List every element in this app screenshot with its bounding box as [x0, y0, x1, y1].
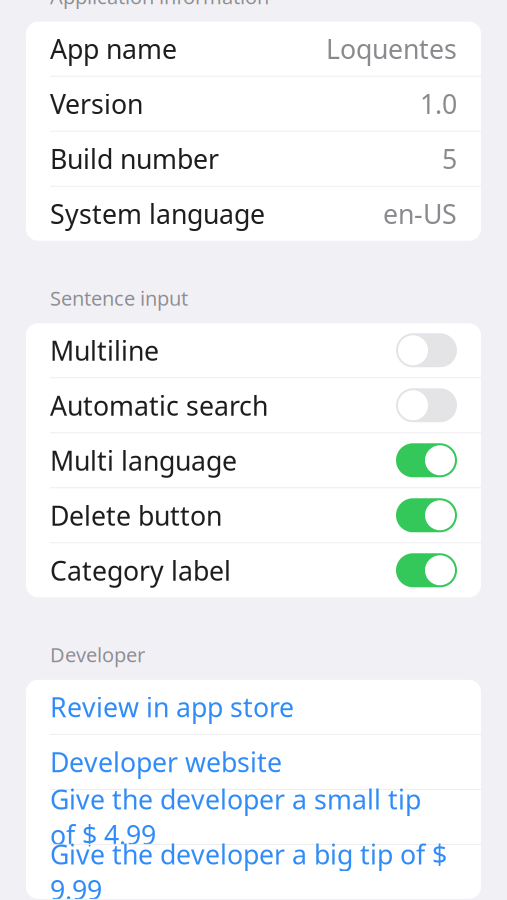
staticText: Multiline — [50, 333, 159, 368]
button[interactable]: Multi language — [26, 433, 481, 487]
staticText: en-US — [383, 196, 457, 231]
staticText: Sentence input — [50, 285, 188, 311]
button[interactable]: App name — [26, 22, 481, 76]
staticText: Version — [50, 86, 143, 121]
staticText: App name — [50, 31, 177, 66]
button[interactable]: Version — [26, 77, 481, 131]
button[interactable]: Automatic search — [26, 378, 481, 432]
staticText: Application information — [50, 0, 269, 10]
button[interactable]: Category label — [26, 543, 481, 597]
staticText: 5 — [442, 141, 457, 176]
staticText: Developer website — [50, 744, 282, 779]
button[interactable]: Give the developer a small tip of $ 4.99 — [26, 790, 481, 844]
staticText: Loquentes — [326, 31, 457, 66]
staticText: Build number — [50, 141, 219, 176]
staticText: Give the developer a big tip of $ 9.99 — [50, 836, 447, 900]
button[interactable]: Give the developer a big tip of $ 9.99 — [26, 845, 481, 899]
button[interactable]: Multiline — [26, 323, 481, 377]
staticText: Developer — [50, 641, 145, 668]
staticText: Multi language — [50, 443, 237, 478]
button[interactable]: Review in app store — [26, 680, 481, 734]
button[interactable]: Developer website — [26, 735, 481, 789]
staticText: 1.0 — [420, 86, 457, 121]
button[interactable]: Delete button — [26, 488, 481, 542]
staticText: Delete button — [50, 498, 222, 533]
staticText: System language — [50, 196, 265, 231]
staticText: Give the developer a small tip of $ 4.99 — [50, 781, 421, 852]
staticText: Category label — [50, 553, 231, 588]
staticText: Review in app store — [50, 689, 294, 724]
staticText: Automatic search — [50, 388, 268, 423]
button[interactable]: Build number — [26, 132, 481, 186]
button[interactable]: System language — [26, 187, 481, 241]
